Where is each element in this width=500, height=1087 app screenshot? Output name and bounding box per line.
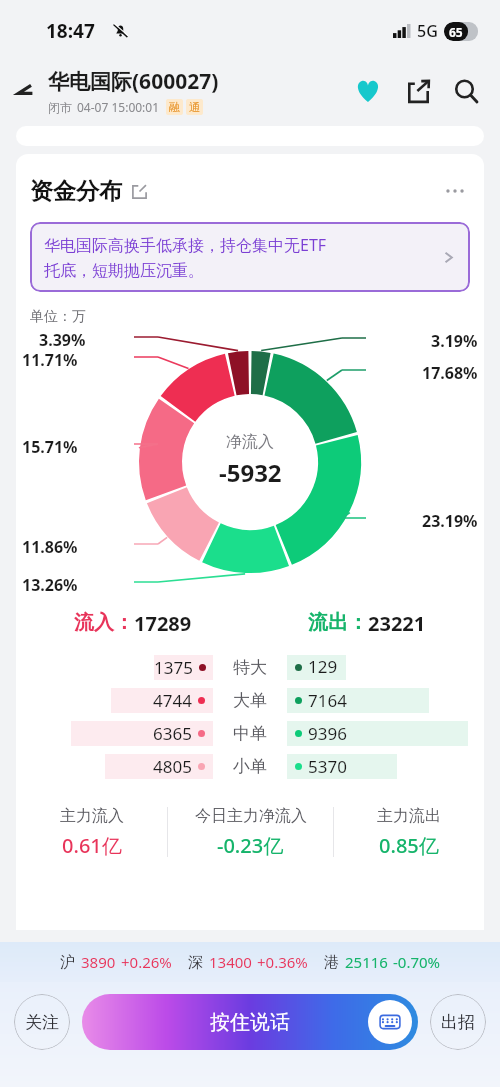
- staticText: 25116: [345, 952, 388, 972]
- button[interactable]: Favorite: [348, 71, 388, 111]
- staticText: 主力流出: [377, 806, 441, 826]
- staticText: 中单: [233, 723, 267, 744]
- staticText: 流出：: [308, 610, 368, 635]
- button[interactable]: Keyboard: [368, 1000, 412, 1044]
- staticText: 17289: [134, 610, 192, 637]
- staticText: -0.70%: [393, 952, 441, 972]
- staticText: 9396: [308, 722, 347, 745]
- button[interactable]: 资金分布: [30, 177, 147, 206]
- button[interactable]: 出招: [430, 994, 486, 1050]
- staticText: 7164: [308, 689, 347, 712]
- staticText: 关注: [25, 1012, 59, 1033]
- button[interactable]: Back: [8, 73, 44, 109]
- staticText: 华电国际高换手低承接，持仓集中无ETF 托底，短期抛压沉重。: [44, 234, 433, 280]
- staticText: 沪: [60, 953, 75, 972]
- staticText: +0.36%: [257, 952, 308, 972]
- staticText: 1375: [154, 656, 193, 679]
- staticText: +0.26%: [121, 952, 172, 972]
- staticText: 深: [188, 953, 203, 972]
- staticText: 特大: [233, 657, 267, 678]
- staticText: 闭市: [48, 100, 72, 115]
- staticText: 23221: [368, 610, 426, 637]
- staticText: 3890: [81, 952, 116, 972]
- staticText: 18:47: [46, 18, 95, 44]
- staticText: 大单: [233, 690, 267, 711]
- staticText: -0.23亿: [217, 832, 284, 859]
- button[interactable]: 主力流入: [16, 801, 167, 863]
- staticText: 单位：万: [30, 308, 86, 326]
- staticText: 11.71%: [22, 349, 78, 371]
- staticText: 0.61亿: [62, 832, 122, 859]
- staticText: 出招: [441, 1012, 475, 1033]
- staticText: 65: [449, 24, 463, 40]
- button[interactable]: 主力流出: [334, 801, 484, 863]
- staticText: 港: [324, 953, 339, 972]
- staticText: 融: [169, 100, 180, 114]
- button[interactable]: 今日主力净流入: [168, 801, 333, 863]
- staticText: 5G: [417, 20, 438, 42]
- staticText: 通: [189, 100, 200, 114]
- button[interactable]: 关注: [14, 994, 70, 1050]
- staticText: 主力流入: [60, 806, 124, 826]
- staticText: 流入：: [74, 610, 134, 635]
- staticText: 1292: [308, 655, 346, 680]
- button[interactable]: 深: [188, 952, 308, 972]
- staticText: 3.39%: [39, 329, 86, 351]
- staticText: 17.68%: [422, 362, 478, 384]
- button[interactable]: 港: [324, 952, 441, 972]
- staticText: 04-07 15:00:01: [77, 99, 160, 115]
- staticText: 3.19%: [431, 330, 478, 352]
- staticText: 23.19%: [422, 510, 478, 532]
- button[interactable]: Search: [446, 71, 486, 111]
- staticText: 今日主力净流入: [195, 806, 307, 826]
- staticText: 15.71%: [22, 436, 78, 458]
- staticText: 华电国际(600027): [48, 67, 219, 96]
- staticText: 5370: [308, 755, 347, 778]
- staticText: 资金分布: [30, 177, 122, 206]
- staticText: 4744: [153, 689, 192, 712]
- staticText: 6365: [153, 722, 192, 745]
- staticText: 净流入: [226, 432, 274, 452]
- staticText: 13.26%: [22, 574, 78, 596]
- staticText: 11.86%: [22, 536, 78, 558]
- staticText: -5932: [219, 456, 282, 489]
- staticText: 13400: [209, 952, 252, 972]
- button[interactable]: More options: [440, 176, 470, 206]
- staticText: 按住说话: [210, 1010, 290, 1035]
- staticText: 0.85亿: [379, 832, 439, 859]
- button[interactable]: 华电国际高换手低承接，持仓集中无ETF 托底，短期抛压沉重。: [30, 222, 470, 292]
- button[interactable]: 按住说话: [82, 994, 418, 1050]
- button[interactable]: Share: [398, 71, 438, 111]
- staticText: 4805: [153, 755, 192, 778]
- staticText: 小单: [233, 756, 267, 777]
- button[interactable]: 沪: [60, 952, 172, 972]
